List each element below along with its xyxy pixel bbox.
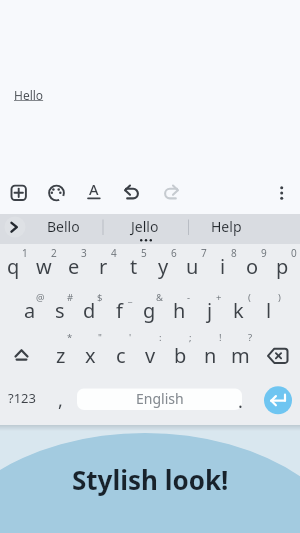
button[interactable]: s <box>45 290 74 330</box>
button[interactable]: u <box>178 246 207 286</box>
staticText: Jello <box>131 217 159 236</box>
staticText: k <box>233 297 244 324</box>
staticText: o <box>246 253 259 280</box>
button[interactable]: r <box>89 246 118 286</box>
staticText: * <box>67 331 73 344</box>
button[interactable]: i <box>208 246 237 286</box>
button[interactable]: Bello <box>27 213 99 239</box>
staticText: English <box>136 389 184 408</box>
staticText: t <box>130 253 138 280</box>
button[interactable]: ?123 <box>2 383 42 413</box>
button[interactable]: z <box>46 335 75 375</box>
staticText: Help <box>211 217 242 236</box>
button[interactable]: w <box>29 246 58 286</box>
button[interactable]: d <box>75 290 104 330</box>
staticText: d <box>83 297 96 324</box>
staticText: " <box>98 331 102 344</box>
staticText: ) <box>278 291 281 304</box>
staticText: , <box>58 388 63 413</box>
staticText: & <box>156 291 163 304</box>
staticText: ?123 <box>8 389 36 407</box>
staticText: e <box>68 253 80 280</box>
button[interactable] <box>255 338 300 373</box>
staticText: s <box>55 297 65 324</box>
staticText: @ <box>36 291 45 304</box>
staticText: j <box>207 297 213 324</box>
button[interactable] <box>6 180 32 206</box>
button[interactable] <box>4 216 26 238</box>
button[interactable]: y <box>149 246 178 286</box>
staticText: Stylish look! <box>72 462 229 497</box>
staticText: # <box>67 291 74 304</box>
button[interactable]: l <box>254 290 283 330</box>
staticText: n <box>204 342 217 369</box>
button[interactable]: c <box>106 335 135 375</box>
button[interactable] <box>158 180 184 206</box>
button[interactable]: t <box>119 246 148 286</box>
button[interactable] <box>264 386 292 414</box>
staticText: Hello <box>14 87 44 103</box>
button[interactable]: v <box>136 335 165 375</box>
staticText: 7 <box>201 246 207 259</box>
staticText: 0 <box>291 246 297 259</box>
staticText: ; <box>189 331 192 344</box>
staticText: Bello <box>47 217 80 236</box>
button[interactable] <box>0 338 45 373</box>
button[interactable]: A <box>84 179 104 199</box>
button[interactable] <box>44 180 70 206</box>
staticText: r <box>99 253 108 280</box>
staticText: x <box>85 342 96 369</box>
button[interactable]: o <box>238 246 267 286</box>
button[interactable]: n <box>196 335 225 375</box>
button[interactable]: j <box>195 290 224 330</box>
staticText: : <box>159 331 162 344</box>
staticText: 1 <box>22 246 28 259</box>
staticText: - <box>187 291 191 304</box>
staticText: z <box>56 342 66 369</box>
button[interactable]: k <box>224 290 253 330</box>
button[interactable]: . <box>228 385 252 417</box>
button[interactable] <box>119 180 145 206</box>
staticText: ! <box>219 331 222 344</box>
staticText: ? <box>248 331 253 344</box>
staticText: p <box>276 253 289 280</box>
staticText: 8 <box>231 246 237 259</box>
button[interactable]: q <box>0 246 28 286</box>
staticText: l <box>266 297 272 324</box>
button[interactable]: a <box>15 290 44 330</box>
button[interactable]: h <box>165 290 194 330</box>
staticText: ' <box>129 331 132 344</box>
staticText: 4 <box>111 246 117 259</box>
staticText: ( <box>248 291 251 304</box>
button[interactable]: m <box>226 335 255 375</box>
staticText: + <box>216 291 222 304</box>
staticText: $ <box>97 291 103 304</box>
staticText: f <box>116 297 123 324</box>
button[interactable] <box>77 388 242 410</box>
staticText: h <box>173 297 186 324</box>
staticText: w <box>36 253 52 280</box>
staticText: 2 <box>51 246 57 259</box>
staticText: 9 <box>261 246 267 259</box>
button[interactable] <box>269 180 295 206</box>
button[interactable]: Jello <box>109 213 181 239</box>
staticText: y <box>158 253 169 280</box>
staticText: 3 <box>81 246 87 259</box>
staticText: 6 <box>171 246 177 259</box>
staticText: i <box>220 253 226 280</box>
staticText: A <box>89 179 99 199</box>
button[interactable]: p <box>268 246 297 286</box>
staticText: q <box>7 253 20 280</box>
button[interactable]: e <box>59 246 88 286</box>
staticText: a <box>24 297 36 324</box>
staticText: g <box>143 297 156 324</box>
button[interactable]: b <box>166 335 195 375</box>
button[interactable]: x <box>76 335 105 375</box>
staticText: b <box>174 342 187 369</box>
button[interactable]: , <box>48 384 72 416</box>
staticText: m <box>231 342 250 369</box>
button[interactable]: g <box>135 290 164 330</box>
button[interactable]: f <box>105 290 134 330</box>
staticText: . <box>238 389 243 414</box>
button[interactable]: Help <box>190 213 262 239</box>
